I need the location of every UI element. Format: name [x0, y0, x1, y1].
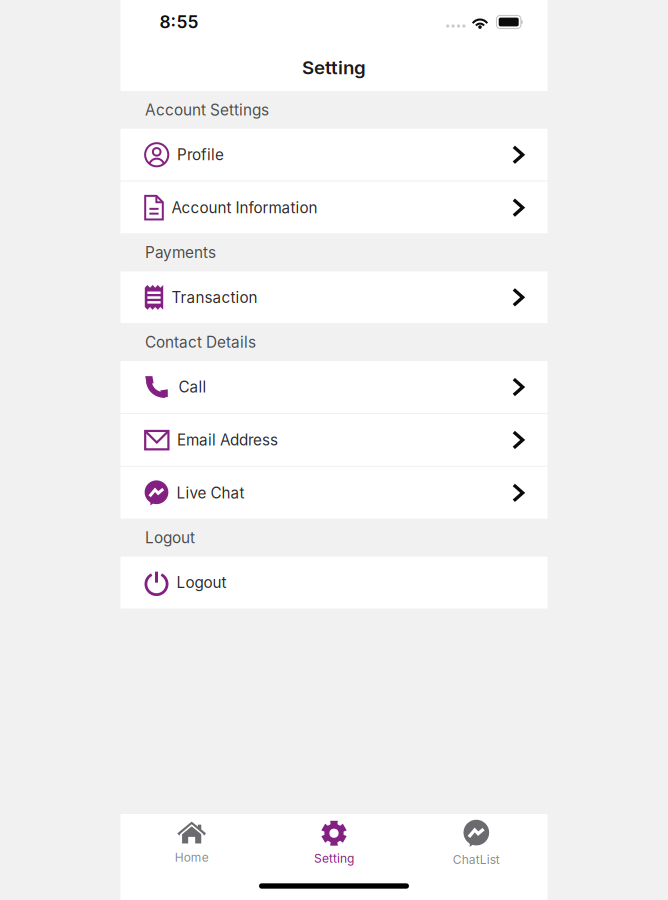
staticText: Transaction [171, 288, 257, 307]
button[interactable]: Live Chat [120, 467, 547, 519]
staticText: Home [175, 850, 209, 865]
staticText: Call [178, 378, 206, 396]
button[interactable]: ChatList [405, 816, 547, 870]
staticText: Logout [176, 573, 226, 592]
button[interactable]: Profile [120, 129, 547, 181]
button[interactable]: Account Information [120, 182, 547, 234]
staticText: Setting [302, 56, 366, 79]
button[interactable]: Email Address [120, 414, 547, 466]
button[interactable]: Home [120, 816, 263, 870]
staticText: Account Information [171, 198, 317, 217]
staticText: Live Chat [176, 484, 244, 502]
staticText: Payments [145, 243, 216, 262]
staticText: Setting [314, 851, 354, 866]
button[interactable]: Transaction [120, 271, 547, 323]
staticText: Profile [177, 146, 224, 164]
button[interactable]: Logout [120, 557, 547, 608]
staticText: Contact Details [145, 333, 256, 351]
staticText: Email Address [177, 431, 278, 449]
staticText: 8:55 [159, 11, 198, 32]
button[interactable]: Call [120, 361, 547, 413]
button[interactable]: Setting [263, 816, 405, 870]
staticText: Account Settings [145, 101, 269, 119]
staticText: ChatList [453, 852, 500, 867]
staticText: Logout [145, 528, 195, 547]
